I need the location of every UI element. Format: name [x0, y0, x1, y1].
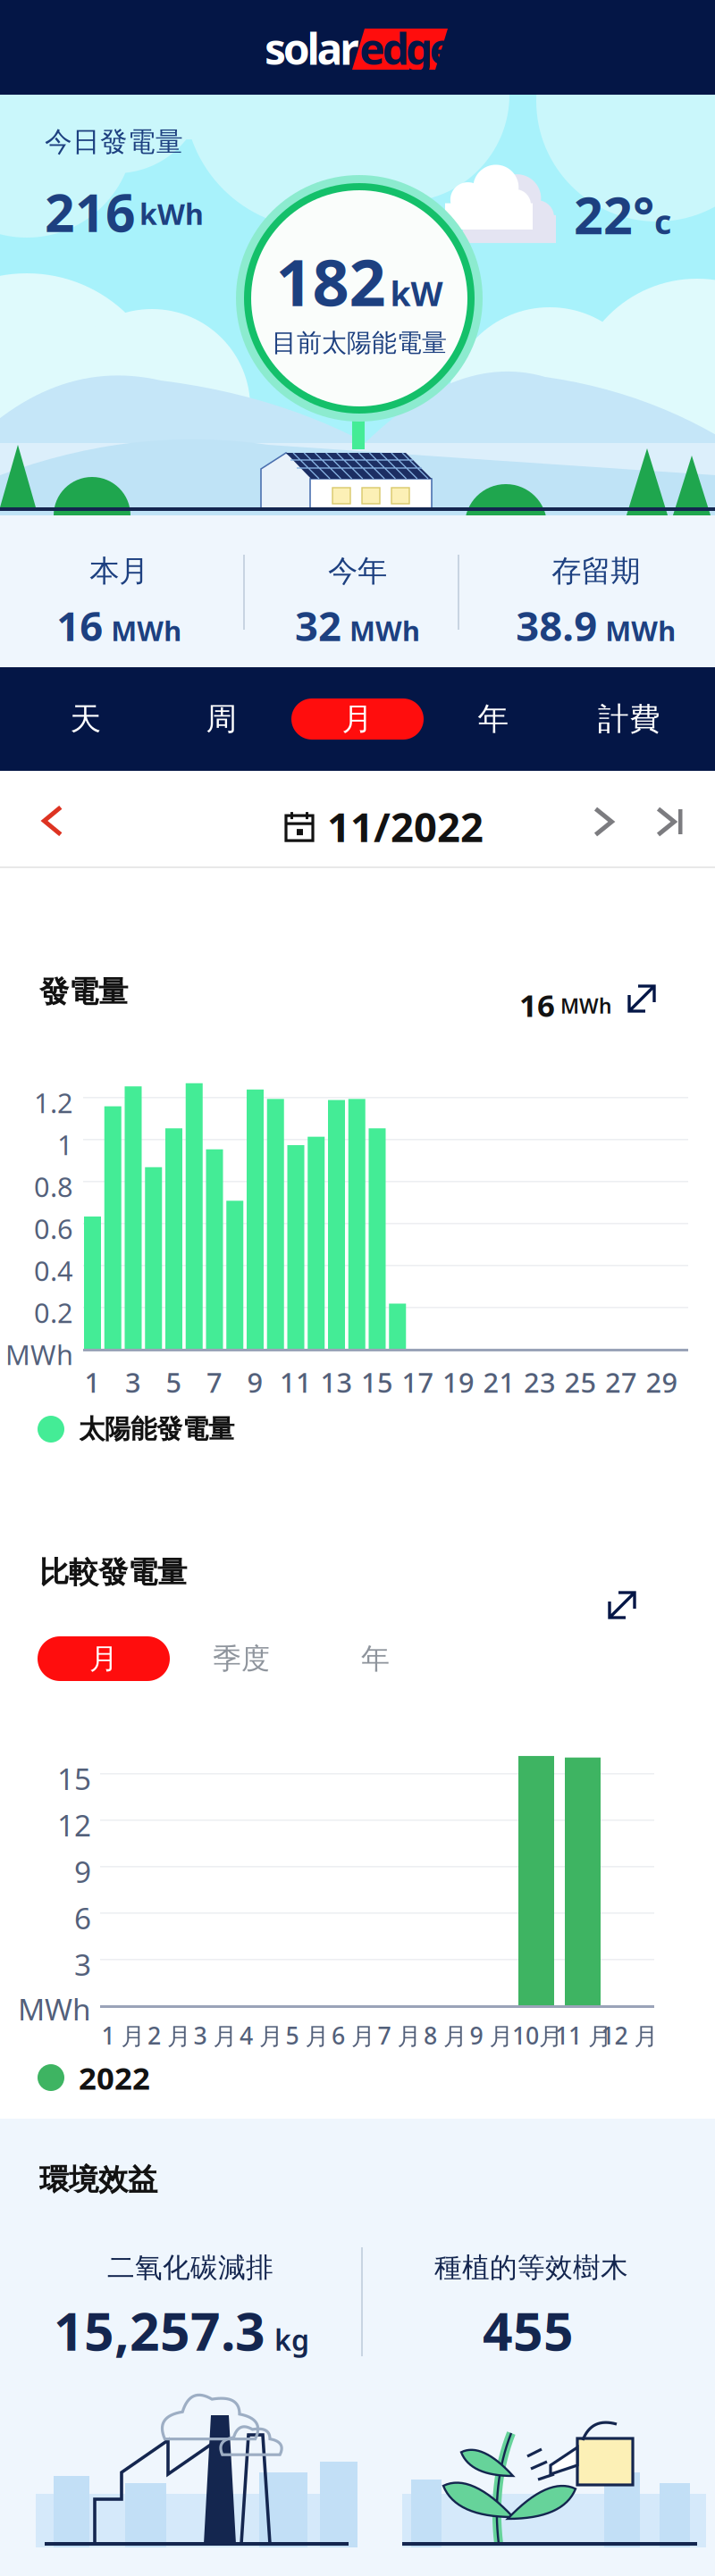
staticText: 2022: [79, 2057, 150, 2098]
staticText: 6 月: [332, 2020, 375, 2051]
staticText: 11/2022: [327, 799, 484, 853]
staticText: 3: [74, 1945, 91, 1984]
staticText: 3: [125, 1364, 141, 1400]
button[interactable]: 周: [154, 667, 290, 771]
staticText: 216: [45, 177, 136, 246]
button[interactable]: Next period: [579, 798, 629, 846]
staticText: edge: [359, 20, 455, 77]
staticText: 比較發電量: [39, 1554, 187, 1591]
staticText: 5: [166, 1364, 182, 1400]
staticText: 22°: [574, 180, 654, 248]
staticText: 0.2: [34, 1294, 73, 1331]
staticText: 存留期: [552, 553, 640, 589]
staticText: 19: [442, 1364, 475, 1400]
button[interactable]: 月: [290, 667, 425, 771]
staticText: 月: [89, 1641, 118, 1676]
staticText: kWh: [139, 195, 204, 233]
button[interactable]: 計費: [561, 667, 697, 771]
button[interactable]: Expand production chart: [626, 984, 660, 1015]
staticText: MWh: [18, 1989, 91, 2029]
staticText: 天: [70, 700, 101, 738]
staticText: MWh: [605, 612, 676, 649]
staticText: 1 月: [101, 2020, 145, 2051]
staticText: 1: [84, 1364, 101, 1400]
button[interactable]: 月: [38, 1636, 170, 1681]
staticText: 12: [57, 1805, 91, 1845]
staticText: kg: [274, 2321, 309, 2359]
staticText: 15,257.3: [54, 2296, 265, 2365]
button[interactable]: 年: [313, 1636, 438, 1681]
staticText: 15: [361, 1364, 393, 1400]
staticText: 目前太陽能電量: [272, 327, 447, 358]
staticText: 種植的等效樹木: [434, 2251, 628, 2285]
staticText: 5 月: [286, 2020, 329, 2051]
staticText: solar: [265, 20, 359, 77]
staticText: 本月: [90, 553, 149, 589]
staticText: 計費: [598, 700, 660, 738]
staticText: 3 月: [193, 2020, 237, 2051]
staticText: 25: [564, 1364, 597, 1400]
staticText: 15: [57, 1759, 91, 1798]
staticText: 7: [206, 1364, 223, 1400]
staticText: 環境效益: [39, 2162, 157, 2198]
staticText: MWh: [111, 612, 182, 649]
staticText: 1: [57, 1126, 73, 1163]
staticText: 12 月: [601, 2020, 658, 2051]
staticText: 9: [247, 1364, 263, 1400]
button[interactable]: 年: [425, 667, 561, 771]
staticText: 6: [74, 1898, 91, 1938]
staticText: 發電量: [39, 974, 128, 1010]
staticText: 455: [483, 2296, 574, 2365]
staticText: c: [654, 199, 671, 243]
staticText: 季度: [213, 1641, 270, 1676]
staticText: 9 月: [470, 2020, 513, 2051]
staticText: 二氧化碳減排: [107, 2251, 273, 2285]
staticText: 16: [57, 598, 103, 652]
staticText: 1.2: [34, 1084, 73, 1121]
staticText: 9: [74, 1852, 91, 1891]
staticText: 月: [342, 700, 373, 738]
staticText: MWh: [349, 612, 420, 649]
staticText: 10月: [512, 2020, 563, 2051]
staticText: 年: [478, 700, 509, 738]
staticText: 0.8: [34, 1168, 73, 1205]
staticText: kW: [390, 271, 443, 315]
staticText: 27: [605, 1364, 637, 1400]
staticText: 11 月: [555, 2020, 612, 2051]
staticText: 周: [206, 700, 237, 738]
staticText: 年: [361, 1641, 390, 1676]
staticText: 太陽能發電量: [79, 1413, 234, 1445]
staticText: 16: [519, 984, 555, 1025]
staticText: 13: [320, 1364, 353, 1400]
button[interactable]: Expand comparison chart: [601, 1586, 645, 1626]
staticText: 38.9: [516, 598, 597, 652]
button[interactable]: Latest period: [642, 798, 692, 846]
staticText: 182: [276, 238, 386, 324]
staticText: 11: [280, 1364, 312, 1400]
staticText: 21: [483, 1364, 515, 1400]
staticText: 4 月: [240, 2020, 283, 2051]
button[interactable]: 季度: [170, 1636, 313, 1681]
staticText: 2 月: [147, 2020, 191, 2051]
staticText: 今年: [328, 553, 387, 589]
staticText: 0.4: [34, 1252, 73, 1289]
button[interactable]: 天: [18, 667, 154, 771]
staticText: 29: [646, 1364, 678, 1400]
staticText: 今日發電量: [45, 125, 183, 159]
staticText: MWh: [5, 1336, 73, 1373]
staticText: 32: [295, 598, 341, 652]
button[interactable]: Previous period: [25, 796, 80, 846]
staticText: 0.6: [34, 1210, 73, 1247]
staticText: 7 月: [378, 2020, 421, 2051]
staticText: 8 月: [424, 2020, 467, 2051]
staticText: MWh: [560, 992, 611, 1019]
staticText: 17: [402, 1364, 434, 1400]
staticText: 23: [524, 1364, 556, 1400]
